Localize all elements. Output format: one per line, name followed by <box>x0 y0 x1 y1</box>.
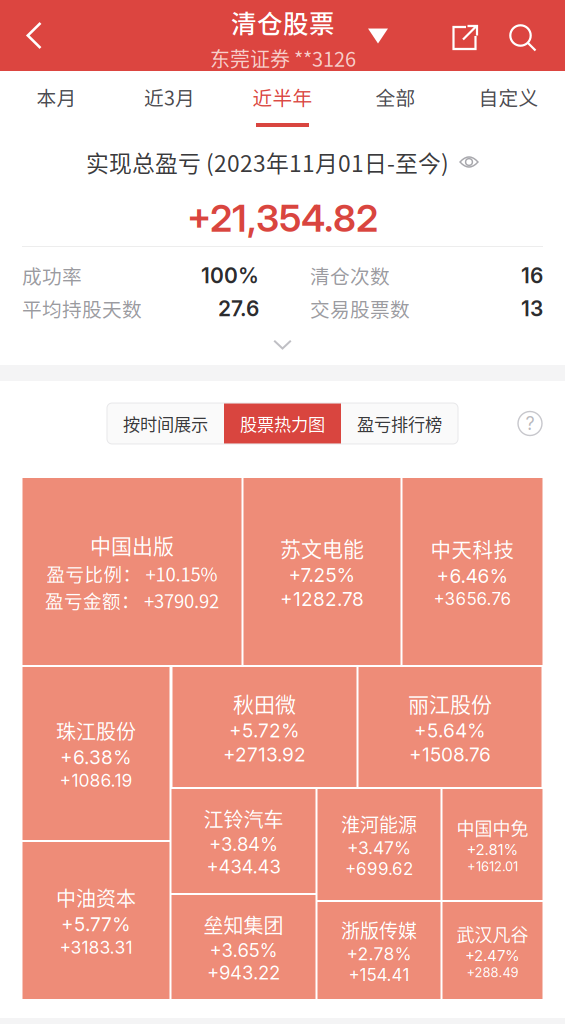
button[interactable]: Share <box>440 10 490 66</box>
staticText: 江铃汽车 <box>203 804 283 833</box>
staticText: +3656.76 <box>433 589 511 609</box>
staticText: +2.78% <box>346 943 411 965</box>
staticText: +288.49 <box>466 965 518 980</box>
staticText: 中国中免 <box>456 814 528 841</box>
staticText: 13 <box>521 296 543 321</box>
button[interactable]: 盈亏排行榜 <box>341 403 458 444</box>
staticText: 实现总盈亏 (2023年11月01日-至今) <box>86 145 449 178</box>
staticText: 自定义 <box>478 83 538 111</box>
staticText: +154.41 <box>348 965 409 985</box>
staticText: 秋田微 <box>233 688 296 718</box>
staticText: +5.77% <box>61 913 131 936</box>
staticText: ? <box>525 413 534 434</box>
staticText: +434.43 <box>206 855 280 878</box>
button[interactable]: 全部 <box>339 71 452 134</box>
button[interactable]: 珠江股份 <box>22 667 169 840</box>
staticText: +2.81% <box>466 841 518 859</box>
staticText: +3.84% <box>209 833 278 855</box>
button[interactable]: 本月 <box>0 71 113 134</box>
staticText: 中天科技 <box>430 534 514 564</box>
staticText: 股票热力图 <box>240 411 325 436</box>
button[interactable]: 中国中免 <box>442 789 542 900</box>
staticText: +6.38% <box>60 746 132 769</box>
button[interactable]: 苏文电能 <box>243 478 400 665</box>
staticText: +1282.78 <box>280 588 364 611</box>
staticText: 近半年 <box>252 83 312 111</box>
button[interactable]: 淮河能源 <box>317 789 440 900</box>
staticText: +1508.76 <box>409 743 491 766</box>
staticText: 27.6 <box>218 296 259 321</box>
staticText: 近3月 <box>144 83 195 111</box>
staticText: 中国出版 <box>90 529 174 560</box>
staticText: +7.25% <box>288 564 355 587</box>
button[interactable]: 清仓股票 <box>203 9 363 67</box>
button[interactable]: 秋田微 <box>172 667 356 787</box>
staticText: 苏文电能 <box>280 532 364 563</box>
staticText: +2713.92 <box>223 743 306 766</box>
staticText: +3.47% <box>347 837 411 859</box>
staticText: +6.46% <box>436 565 508 588</box>
button[interactable]: 近3月 <box>113 71 226 134</box>
staticText: 武汉凡谷 <box>456 920 528 947</box>
staticText: 成功率 <box>22 261 82 290</box>
staticText: 盈亏排行榜 <box>357 411 442 436</box>
staticText: +1612.01 <box>467 859 518 874</box>
staticText: +699.62 <box>345 859 413 879</box>
button[interactable]: 丽江股份 <box>358 667 541 787</box>
staticText: 平均持股天数 <box>22 294 142 323</box>
staticText: 淮河能源 <box>341 810 417 837</box>
button[interactable]: Help <box>510 403 550 443</box>
staticText: 全部 <box>375 83 415 111</box>
button[interactable]: 武汉凡谷 <box>442 902 542 999</box>
staticText: +21,354.82 <box>187 195 378 241</box>
staticText: 浙版传媒 <box>341 916 417 943</box>
staticText: 清仓股票 <box>231 4 335 40</box>
button[interactable]: Expand <box>247 325 317 365</box>
button[interactable]: 江铃汽车 <box>171 789 315 893</box>
staticText: +5.64% <box>414 719 486 742</box>
staticText: 16 <box>521 263 543 288</box>
staticText: 100% <box>201 263 259 288</box>
staticText: +943.22 <box>207 961 280 984</box>
button[interactable]: 自定义 <box>452 71 565 134</box>
button[interactable]: 中油资本 <box>22 842 169 999</box>
staticText: 丽江股份 <box>408 688 492 718</box>
staticText: 本月 <box>36 83 76 111</box>
button[interactable]: Search <box>497 10 549 66</box>
staticText: 盈亏金额： +3790.92 <box>45 587 219 613</box>
button[interactable]: Switch account <box>361 21 395 51</box>
button[interactable]: 中天科技 <box>402 478 542 665</box>
staticText: 盈亏比例： +10.15% <box>46 560 217 587</box>
staticText: +3183.31 <box>59 937 132 958</box>
staticText: 中油资本 <box>56 883 136 912</box>
button[interactable]: 垒知集团 <box>171 895 315 999</box>
staticText: +1086.19 <box>59 770 132 791</box>
staticText: +5.72% <box>229 719 300 742</box>
staticText: 垒知集团 <box>203 910 283 939</box>
staticText: +3.65% <box>209 939 277 961</box>
staticText: 按时间展示 <box>123 411 208 436</box>
button[interactable]: Back <box>8 0 60 71</box>
staticText: 东莞证券 **3126 <box>210 43 356 72</box>
staticText: 清仓次数 <box>310 261 390 290</box>
button[interactable]: 近半年 <box>226 71 339 134</box>
button[interactable]: 浙版传媒 <box>317 902 440 999</box>
staticText: 珠江股份 <box>56 716 136 745</box>
button[interactable]: 股票热力图 <box>224 403 341 444</box>
button[interactable]: 中国出版 <box>22 478 241 665</box>
staticText: 交易股票数 <box>310 294 410 323</box>
button[interactable]: 按时间展示 <box>107 403 224 444</box>
staticText: +2.47% <box>465 947 520 965</box>
